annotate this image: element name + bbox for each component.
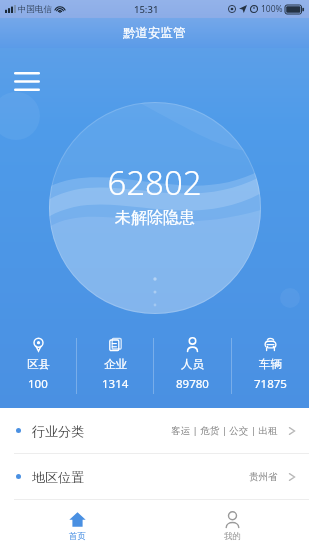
staticText: 地区位置 — [32, 469, 84, 485]
button[interactable]: 区县 — [0, 330, 76, 404]
staticText: 区县 — [27, 357, 50, 371]
button[interactable]: 我的 — [201, 504, 263, 550]
staticText: 62802 — [107, 160, 202, 205]
button[interactable]: 行业分类 — [0, 408, 309, 453]
button[interactable]: 首页 — [46, 504, 108, 550]
staticText: 客运 | 危货 | 公交 | 出租 — [171, 424, 278, 437]
staticText: 1314 — [102, 376, 129, 392]
staticText: 黔道安监管 — [123, 25, 186, 41]
staticText: 我的 — [224, 531, 241, 542]
staticText: 车辆 — [259, 357, 282, 371]
staticText: 未解除隐患 — [115, 208, 195, 228]
button[interactable]: Menu — [14, 64, 48, 98]
button[interactable]: 企业 — [77, 330, 153, 404]
staticText: 行业分类 — [32, 423, 84, 439]
button[interactable]: 人员 — [154, 330, 231, 404]
staticText: 100 — [28, 376, 48, 392]
staticText: 首页 — [69, 531, 86, 542]
button[interactable]: 地区位置 — [0, 454, 309, 499]
staticText: 人员 — [181, 357, 204, 371]
staticText: 89780 — [176, 376, 209, 392]
staticText: 15:31 — [134, 3, 159, 16]
staticText: 企业 — [104, 357, 127, 371]
staticText: 贵州省 — [249, 471, 278, 483]
button[interactable]: 车辆 — [232, 330, 309, 404]
staticText: 71875 — [254, 376, 287, 392]
staticText: 中国电信 — [18, 4, 52, 15]
staticText: 100% — [261, 3, 283, 15]
